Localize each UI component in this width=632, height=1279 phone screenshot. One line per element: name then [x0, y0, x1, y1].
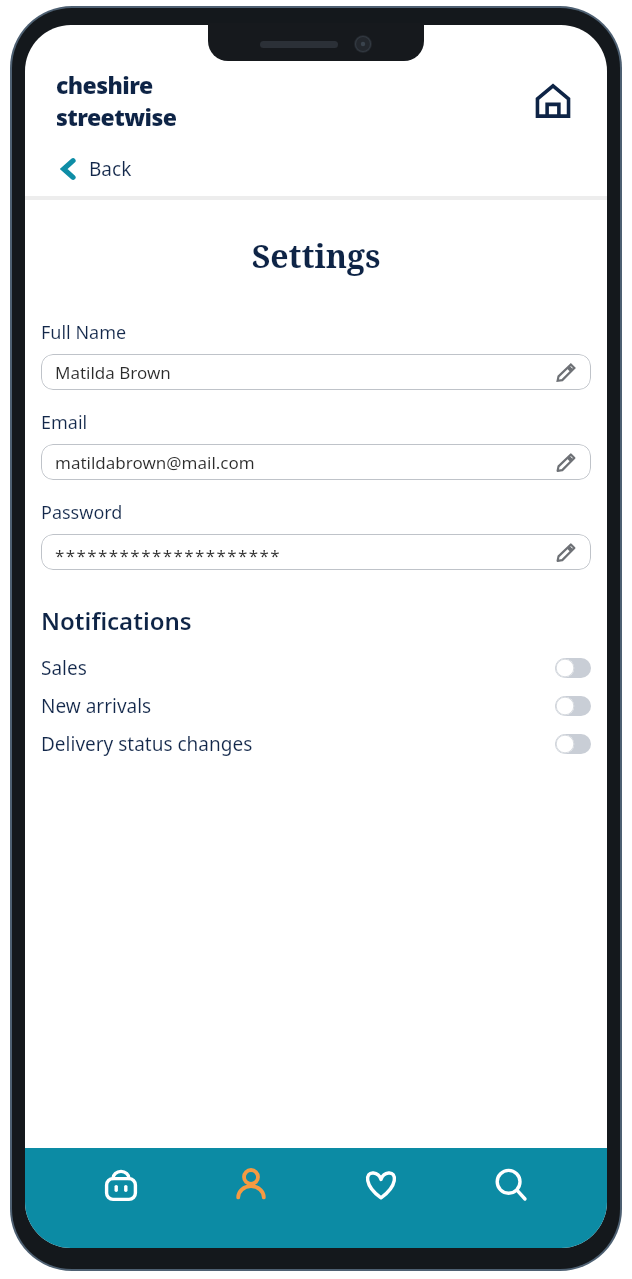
- button[interactable]: Matilda Brown: [41, 354, 591, 390]
- button[interactable]: Home: [530, 78, 576, 124]
- staticText: Sales: [41, 655, 555, 681]
- staticText: Full Name: [41, 320, 127, 345]
- button[interactable]: *********************: [41, 534, 591, 570]
- staticText: Settings: [25, 234, 607, 278]
- staticText: streetwise: [56, 101, 177, 132]
- button[interactable]: New arrivals: [25, 687, 607, 725]
- button[interactable]: Shop: [87, 1151, 155, 1219]
- staticText: matildabrown@mail.com: [55, 451, 555, 474]
- staticText: Notifications: [41, 604, 192, 637]
- staticText: Password: [41, 500, 123, 525]
- button[interactable]: Delivery status changes: [25, 725, 607, 763]
- button[interactable]: Account: [217, 1151, 285, 1219]
- button[interactable]: Sales: [25, 649, 607, 687]
- button[interactable]: matildabrown@mail.com: [41, 444, 591, 480]
- button[interactable]: Back: [53, 150, 138, 188]
- staticText: cheshire: [56, 69, 153, 100]
- staticText: Matilda Brown: [55, 361, 555, 384]
- staticText: New arrivals: [41, 693, 555, 719]
- button[interactable]: Favourites: [347, 1151, 415, 1219]
- staticText: Delivery status changes: [41, 731, 555, 757]
- staticText: Email: [41, 410, 88, 435]
- button[interactable]: Search: [477, 1151, 545, 1219]
- staticText: *********************: [55, 544, 555, 567]
- staticText: Back: [89, 156, 132, 182]
